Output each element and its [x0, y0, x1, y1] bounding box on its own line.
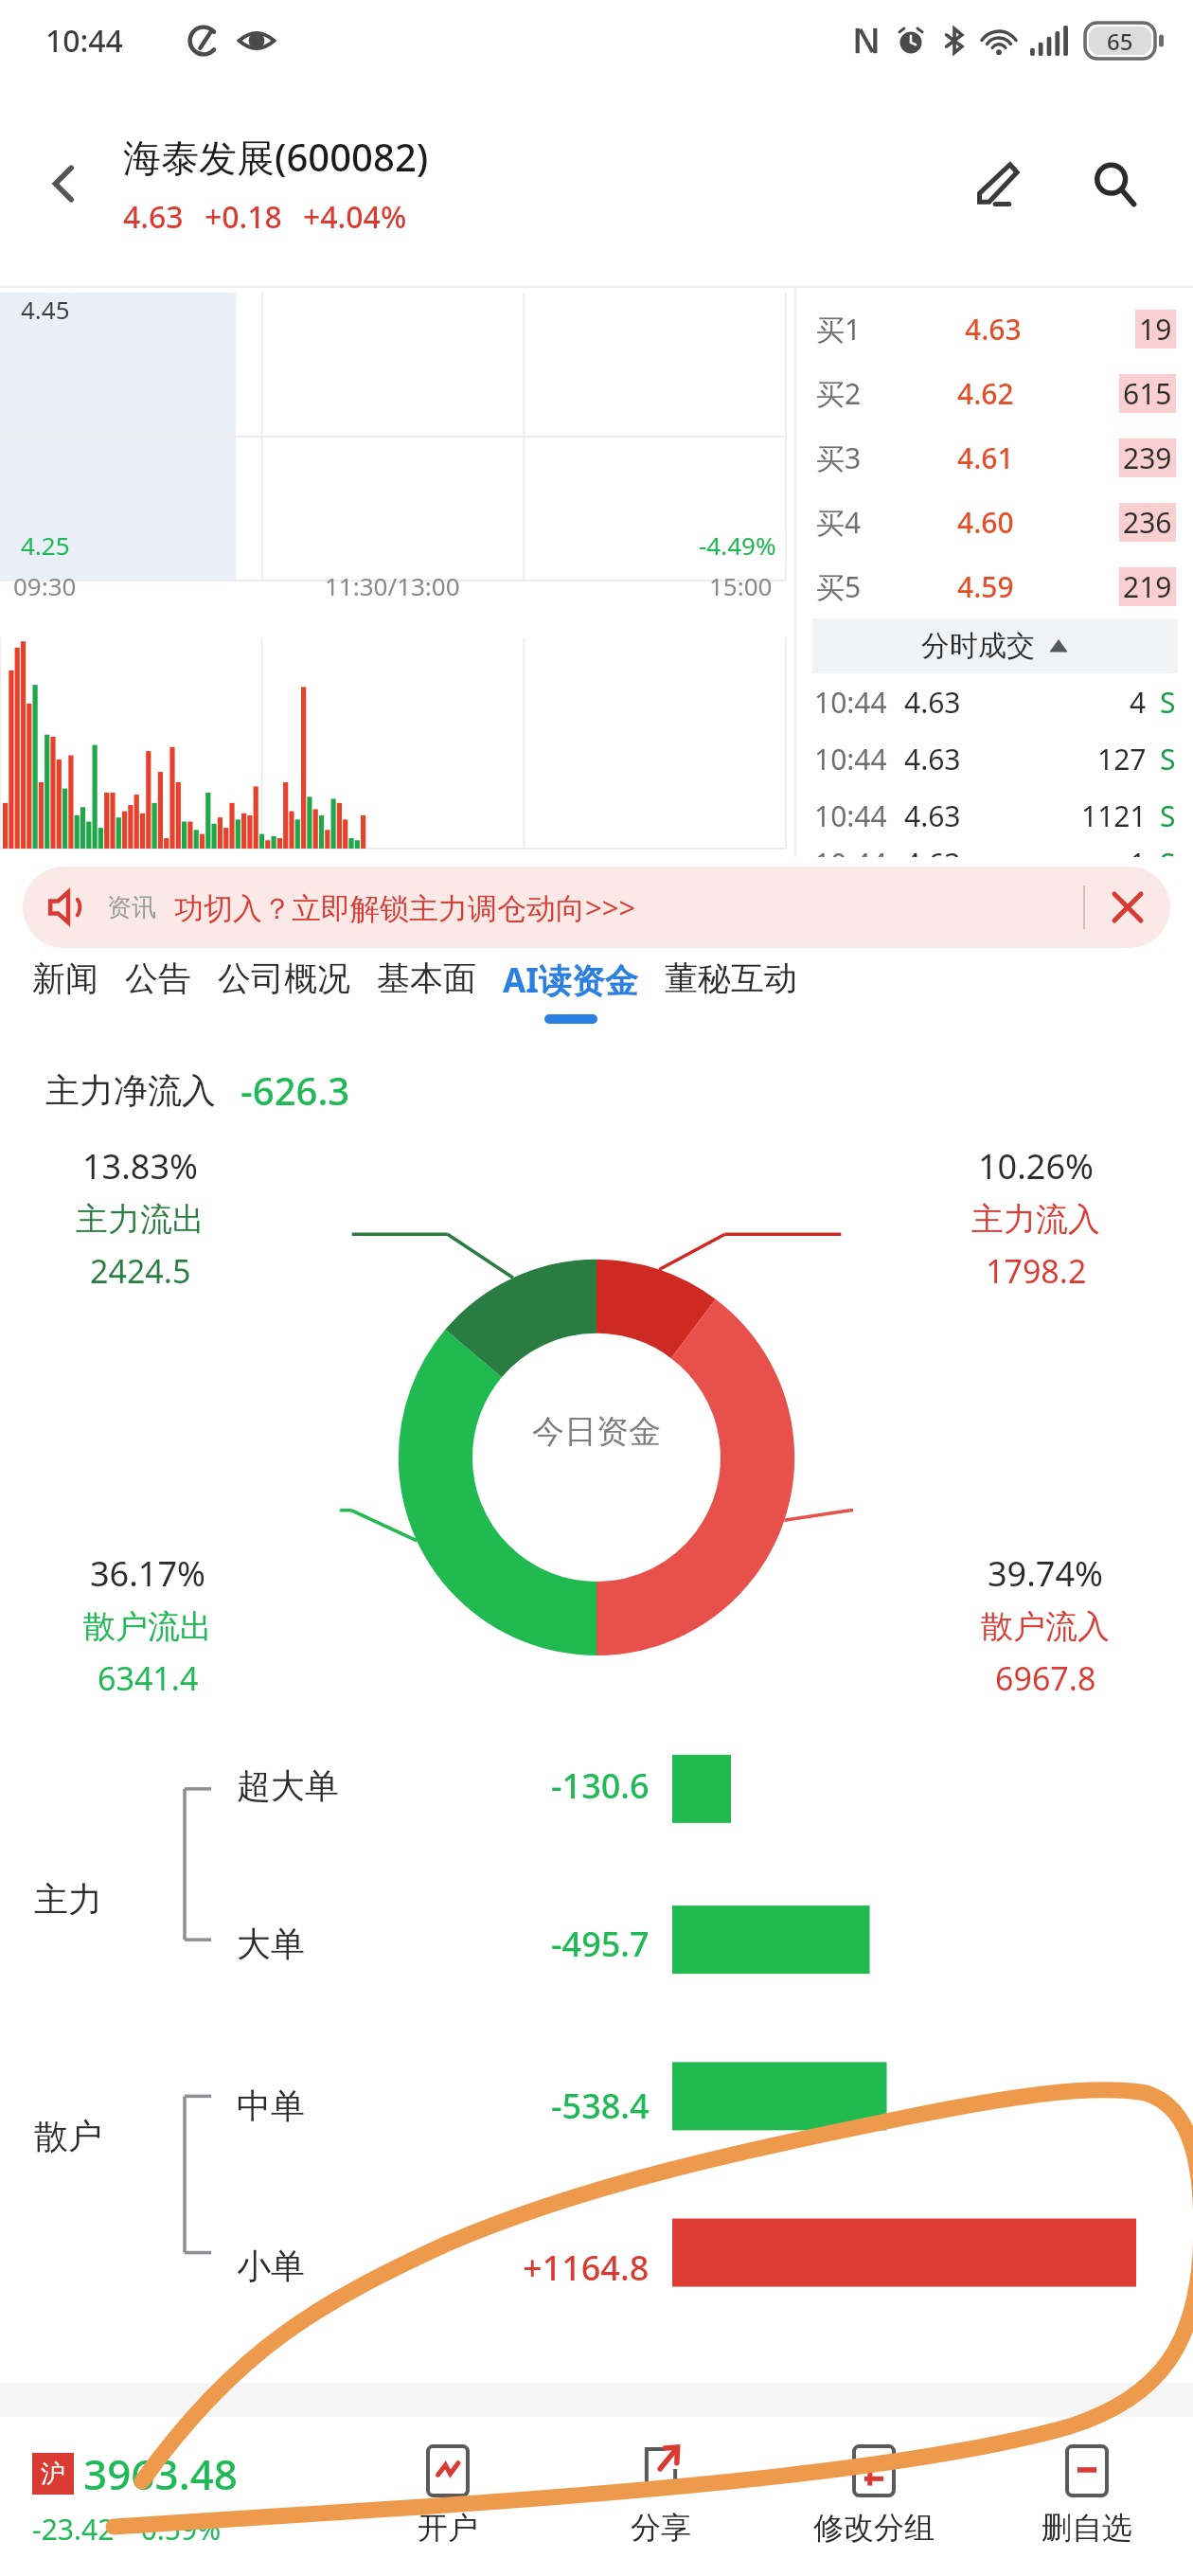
staticText: 4.63 [904, 740, 961, 778]
staticText: S [1160, 740, 1176, 778]
staticText: 开户 [418, 2509, 478, 2547]
staticText: 散户 [34, 2115, 102, 2157]
staticText: 127 [1097, 740, 1147, 778]
staticText: S [1160, 683, 1176, 722]
staticText: 615 [1123, 374, 1172, 413]
staticText: S [1160, 796, 1176, 835]
staticText: 修改分组 [813, 2509, 935, 2547]
button[interactable]: 新闻 [21, 957, 110, 1011]
staticText: 公告 [125, 957, 191, 999]
staticText: 09:30 [13, 569, 77, 602]
staticText: 分享 [631, 2509, 691, 2547]
staticText: 1798.2 [986, 1249, 1087, 1293]
staticText: 基本面 [377, 957, 476, 999]
button[interactable]: 公告 [114, 957, 203, 1011]
staticText: 4.63 [904, 683, 961, 722]
staticText: +1164.8 [523, 2245, 650, 2283]
staticText: 买1 [816, 310, 862, 349]
staticText: 36.17% [90, 1550, 205, 1597]
staticText: 4.61 [957, 438, 1014, 477]
staticText: -538.4 [551, 2083, 650, 2129]
staticText: 1 [1130, 844, 1147, 857]
button[interactable]: 买4 [797, 490, 1193, 554]
staticText: 海泰发展(600082) [123, 131, 429, 183]
button[interactable]: 董秘互动 [653, 957, 809, 1011]
staticText: 主力流入 [971, 1199, 1100, 1240]
staticText: 大单 [237, 1923, 305, 1965]
staticText: 沪 [41, 2459, 65, 2490]
button[interactable]: 10:44 [797, 673, 1193, 730]
staticText: 散户流入 [981, 1606, 1110, 1647]
button[interactable]: 开户 [341, 2417, 554, 2576]
button[interactable]: 10:44 [797, 844, 1193, 857]
button[interactable]: 10:44 [797, 730, 1193, 787]
staticText: 3963.48 [83, 2445, 238, 2502]
button[interactable]: Back [27, 146, 102, 222]
button[interactable]: 公司概况 [206, 957, 362, 1011]
staticText: 分时成交 [921, 628, 1035, 664]
button[interactable]: 基本面 [365, 957, 488, 1011]
staticText: 2424.5 [90, 1249, 191, 1293]
staticText: S [1160, 844, 1176, 857]
button[interactable]: 分时成交 [812, 618, 1178, 673]
staticText: 4.60 [957, 503, 1014, 542]
staticText: 主力净流入 [45, 1069, 216, 1112]
button[interactable]: 删自选 [980, 2417, 1193, 2576]
staticText: 买4 [816, 503, 862, 542]
staticText: AI读资金 [503, 957, 638, 1003]
staticText: 公司概况 [218, 957, 350, 999]
button[interactable]: 10:44 [797, 787, 1193, 844]
button[interactable]: 买1 [797, 296, 1193, 361]
staticText: 买3 [816, 438, 862, 477]
staticText: 10:44 [45, 20, 123, 62]
button[interactable]: Search [1074, 143, 1155, 224]
staticText: 15:00 [709, 569, 773, 602]
button[interactable]: 买3 [797, 425, 1193, 490]
staticText: 39.74% [988, 1550, 1103, 1597]
staticText: 1121 [1081, 796, 1147, 835]
staticText: -495.7 [551, 1921, 650, 1967]
staticText: 4.63 [904, 796, 961, 835]
staticText: 买5 [816, 567, 862, 606]
staticText: 散户流出 [83, 1606, 212, 1647]
staticText: +4.04% [303, 196, 407, 238]
staticText: 11:30/13:00 [325, 569, 460, 602]
staticText: 4.45 [21, 293, 70, 326]
staticText: 4.59 [957, 567, 1014, 606]
staticText: 功切入？立即解锁主力调仓动向>>> [174, 887, 636, 927]
staticText: 超大单 [237, 1764, 339, 1807]
staticText: 219 [1123, 567, 1172, 606]
staticText: 新闻 [32, 957, 98, 999]
staticText: 4.63 [904, 844, 961, 857]
button[interactable]: 分享 [554, 2417, 767, 2576]
staticText: 13.83% [82, 1143, 198, 1190]
staticText: 65 [1107, 26, 1133, 57]
staticText: 10:44 [814, 683, 887, 722]
button[interactable]: AI读资金 [491, 957, 650, 1024]
staticText: 今日资金 [532, 1411, 661, 1452]
staticText: 4.62 [957, 374, 1014, 413]
staticText: 19 [1139, 310, 1172, 349]
staticText: 删自选 [1042, 2509, 1132, 2547]
staticText: 董秘互动 [665, 957, 797, 999]
staticText: 资讯 [107, 892, 156, 923]
staticText: +0.18 [205, 196, 282, 238]
staticText: 中单 [237, 2084, 305, 2127]
staticText: 236 [1123, 503, 1172, 542]
button[interactable]: Close [1085, 867, 1170, 948]
staticText: 10:44 [814, 796, 887, 835]
staticText: 4.63 [965, 310, 1022, 349]
button[interactable]: 沪 [0, 2417, 341, 2576]
staticText: -130.6 [551, 1762, 650, 1809]
button[interactable]: 买2 [797, 361, 1193, 425]
staticText: 4 [1130, 683, 1147, 722]
staticText: 6967.8 [995, 1656, 1096, 1700]
button[interactable]: Edit [955, 143, 1037, 224]
staticText: -0.59% [132, 2510, 222, 2549]
button[interactable]: 修改分组 [767, 2417, 980, 2576]
button[interactable]: 资讯 [23, 867, 1170, 948]
staticText: 小单 [237, 2245, 305, 2283]
staticText: 主力流出 [76, 1199, 205, 1240]
staticText: 买2 [816, 374, 862, 413]
button[interactable]: 买5 [797, 554, 1193, 618]
